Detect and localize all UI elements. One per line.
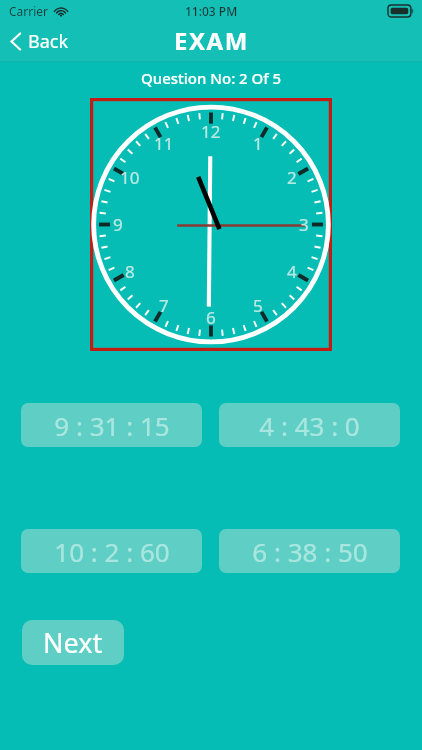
staticText: 4 : 43 : 0 — [259, 408, 360, 443]
button[interactable]: 9 : 31 : 15 — [21, 403, 202, 447]
staticText: 12 — [201, 120, 221, 143]
staticText: Back — [28, 29, 69, 54]
staticText: 7 — [159, 294, 169, 317]
button[interactable]: 4 : 43 : 0 — [219, 403, 400, 447]
staticText: Next — [43, 624, 103, 661]
staticText: 2 — [287, 166, 297, 189]
staticText: 11 — [154, 132, 174, 155]
button[interactable]: 10 : 2 : 60 — [21, 529, 202, 573]
staticText: 4 — [287, 260, 297, 283]
button[interactable]: Back — [0, 23, 83, 60]
staticText: 1 — [253, 132, 263, 155]
staticText: 10 — [120, 166, 140, 189]
button[interactable]: 6 : 38 : 50 — [219, 529, 400, 573]
staticText: 9 : 31 : 15 — [54, 408, 170, 443]
button[interactable]: Next — [22, 620, 124, 665]
staticText: 11:03 PM — [185, 3, 238, 19]
staticText: Carrier — [9, 3, 49, 19]
staticText: 8 — [125, 260, 135, 283]
staticText: 10 : 2 : 60 — [54, 534, 170, 569]
staticText: 9 — [113, 213, 123, 236]
staticText: Question No: 2 Of 5 — [141, 68, 282, 88]
staticText: 6 — [206, 306, 216, 329]
staticText: 5 — [253, 294, 263, 317]
staticText: 3 — [299, 213, 309, 236]
staticText: EXAM — [174, 24, 249, 57]
staticText: 6 : 38 : 50 — [252, 534, 368, 569]
